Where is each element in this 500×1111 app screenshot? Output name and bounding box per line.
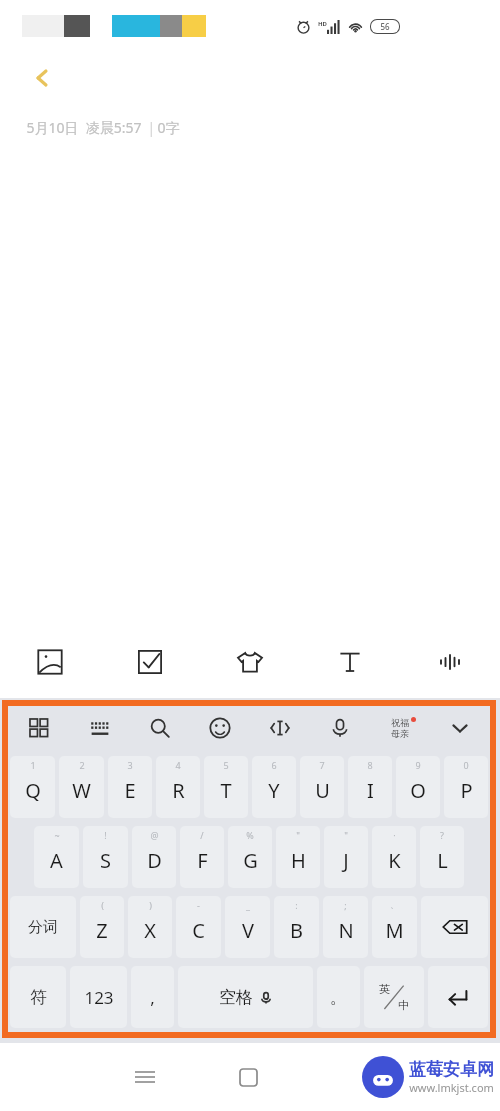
staticText: R [172, 777, 185, 804]
button[interactable]: Style [200, 626, 300, 698]
button[interactable]: 3 [108, 756, 152, 818]
staticText: Q [25, 777, 41, 804]
button[interactable]: Switch English Chinese [364, 966, 424, 1028]
button[interactable]: ( [80, 896, 124, 958]
staticText: 5 [223, 759, 229, 771]
staticText: 0字 [157, 118, 180, 137]
button[interactable]: 5 [204, 756, 248, 818]
button[interactable]: ! [83, 826, 128, 888]
staticText: 7 [319, 759, 325, 771]
staticText: 空格 [219, 987, 253, 1008]
button[interactable]: Cursor [250, 706, 310, 750]
staticText: 6 [271, 759, 277, 771]
button[interactable]: Image [0, 626, 100, 698]
button[interactable]: 6 [252, 756, 296, 818]
staticText: - [197, 899, 200, 911]
staticText: P [460, 777, 473, 804]
staticText: F [197, 847, 208, 874]
staticText: L [437, 847, 448, 874]
button[interactable]: Emoji [190, 706, 250, 750]
button[interactable]: ~ [34, 826, 79, 888]
button[interactable]: 9 [396, 756, 440, 818]
button[interactable]: % [228, 826, 272, 888]
button[interactable]: 7 [300, 756, 344, 818]
staticText: M [385, 917, 404, 944]
button[interactable]: Text format [300, 626, 400, 698]
button[interactable]: · [372, 826, 416, 888]
button[interactable]: ) [128, 896, 172, 958]
staticText: 、 [390, 899, 399, 910]
button[interactable]: / [180, 826, 224, 888]
staticText: 1 [30, 759, 36, 771]
button[interactable]: Back [20, 56, 64, 100]
staticText: 蓝莓安卓网 [409, 1059, 494, 1080]
button[interactable]: Keyboard [69, 706, 130, 750]
staticText: B [290, 917, 303, 944]
button[interactable]: 0 [444, 756, 488, 818]
button[interactable]: 。 [317, 966, 360, 1028]
staticText: E [124, 777, 136, 804]
button[interactable]: ; [323, 896, 368, 958]
staticText: 56 [380, 21, 390, 32]
staticText: 中 [398, 998, 409, 1012]
staticText: 母亲 [391, 728, 409, 739]
button[interactable]: @ [132, 826, 176, 888]
staticText: 5月10日 凌晨5:57 [26, 118, 142, 137]
staticText: Y [268, 777, 280, 804]
button[interactable]: Search [130, 706, 190, 750]
staticText: X [144, 917, 156, 944]
staticText: 分词 [28, 918, 58, 937]
staticText: www.lmkjst.com [409, 1080, 494, 1095]
button[interactable]: 2 [59, 756, 104, 818]
staticText: % [246, 829, 254, 841]
button[interactable]: Voice [400, 626, 500, 698]
button[interactable]: Stickers [370, 706, 430, 750]
button[interactable]: Grid [8, 706, 69, 750]
button[interactable]: Hide keyboard [430, 706, 490, 750]
button[interactable]: Recents [224, 1053, 272, 1101]
staticText: | [142, 118, 157, 137]
staticText: O [410, 777, 426, 804]
button[interactable]: ? [420, 826, 464, 888]
button[interactable]: 、 [372, 896, 417, 958]
button[interactable]: _ [225, 896, 270, 958]
button[interactable]: 8 [348, 756, 392, 818]
button[interactable]: Checklist [100, 626, 200, 698]
staticText: N [338, 917, 354, 944]
button[interactable]: Menu [121, 1053, 169, 1101]
staticText: C [192, 917, 205, 944]
staticText: D [147, 847, 162, 874]
staticText: J [343, 847, 349, 874]
button[interactable]: Voice [310, 706, 370, 750]
staticText: " [296, 829, 300, 841]
staticText: ) [149, 899, 152, 911]
button[interactable]: : [274, 896, 319, 958]
button[interactable]: 符 [10, 966, 66, 1028]
button[interactable]: Enter [428, 966, 488, 1028]
button[interactable]: 4 [156, 756, 200, 818]
staticText: @ [150, 829, 159, 841]
button[interactable]: 空格 [178, 966, 313, 1028]
staticText: U [315, 777, 330, 804]
staticText: _ [246, 899, 250, 911]
staticText: S [100, 847, 111, 874]
staticText: 9 [415, 759, 421, 771]
button[interactable]: 123 [70, 966, 127, 1028]
staticText: 8 [367, 759, 373, 771]
staticText: , [150, 986, 155, 1009]
staticText: ~ [54, 829, 60, 841]
staticText: 0 [463, 759, 469, 771]
button[interactable]: Delete [421, 896, 488, 958]
button[interactable]: 1 [10, 756, 55, 818]
button[interactable]: 分词 [10, 896, 76, 958]
button[interactable]: , [131, 966, 174, 1028]
button[interactable]: " [324, 826, 368, 888]
staticText: Z [96, 917, 108, 944]
staticText: H [291, 847, 306, 874]
staticText: ? [440, 829, 444, 841]
staticText: " [344, 829, 348, 841]
staticText: 4 [175, 759, 181, 771]
button[interactable]: " [276, 826, 320, 888]
staticText: HD [318, 20, 327, 28]
button[interactable]: - [176, 896, 221, 958]
